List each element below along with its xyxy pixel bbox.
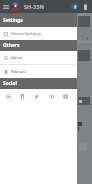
button[interactable]: Website: [2, 89, 14, 103]
button[interactable]: Open navigation menu: [0, 0, 11, 13]
button[interactable]: Bluetooth connected: [71, 3, 78, 10]
staticText: Social: [3, 80, 17, 87]
button[interactable]: About: [0, 51, 77, 64]
staticText: Manual: [11, 69, 26, 75]
staticText: Settings: [3, 17, 23, 24]
button[interactable]: Facebook: [16, 89, 28, 103]
staticText: SH-35N: [24, 3, 44, 10]
staticText: About: [11, 55, 23, 61]
staticText: Device Settings: [11, 31, 41, 37]
button[interactable]: YouTube: [59, 89, 71, 103]
staticText: Others: [3, 42, 20, 49]
button[interactable]: Manual: [0, 65, 77, 78]
button[interactable]: Twitter: [30, 89, 42, 103]
button[interactable]: Instagram: [45, 89, 57, 103]
button[interactable]: Device Settings: [0, 27, 77, 40]
